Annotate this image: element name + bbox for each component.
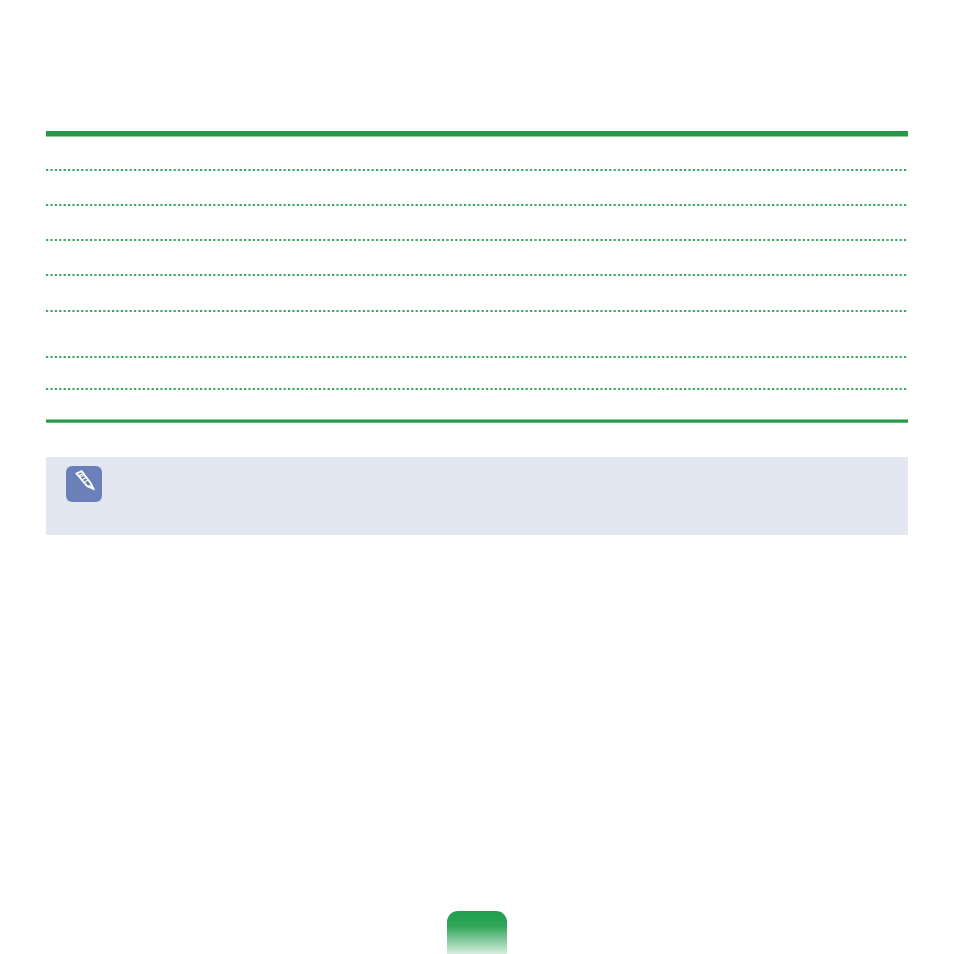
button[interactable]: Edit note	[46, 457, 908, 535]
button[interactable]: Edit note	[66, 466, 102, 502]
button[interactable]: Page number	[447, 911, 507, 954]
